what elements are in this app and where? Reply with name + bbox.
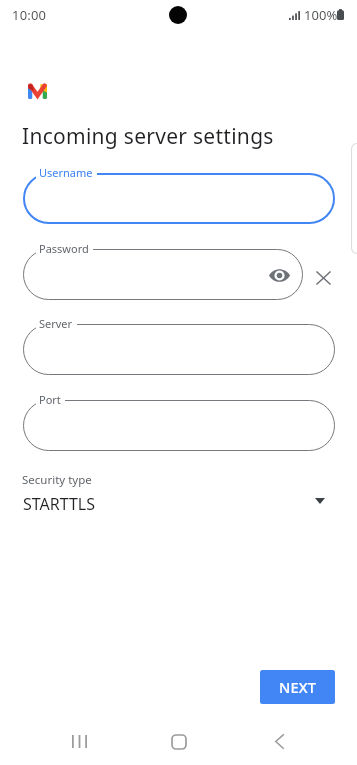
button[interactable]: Password — [23, 249, 303, 300]
staticText: Security type — [22, 472, 92, 488]
staticText: Port — [39, 392, 61, 407]
button[interactable]: Clear password — [306, 261, 340, 295]
staticText: 100% — [304, 6, 338, 24]
staticText: NEXT — [279, 677, 317, 697]
button[interactable]: Username — [23, 173, 335, 224]
button[interactable]: Server — [23, 324, 335, 375]
staticText: Password — [39, 241, 89, 256]
button[interactable]: NEXT — [260, 670, 335, 704]
button[interactable]: Security type — [0, 470, 357, 530]
staticText: STARTTLS — [23, 493, 96, 515]
button[interactable]: Back — [255, 719, 303, 764]
staticText: Username — [39, 165, 93, 180]
staticText: Server — [39, 316, 73, 331]
button[interactable]: Home — [155, 719, 203, 764]
button[interactable]: Port — [23, 400, 335, 451]
button[interactable]: Show password — [265, 261, 293, 289]
button[interactable]: Recents — [55, 719, 103, 764]
staticText: Incoming server settings — [22, 122, 274, 151]
staticText: 10:00 — [12, 6, 47, 24]
